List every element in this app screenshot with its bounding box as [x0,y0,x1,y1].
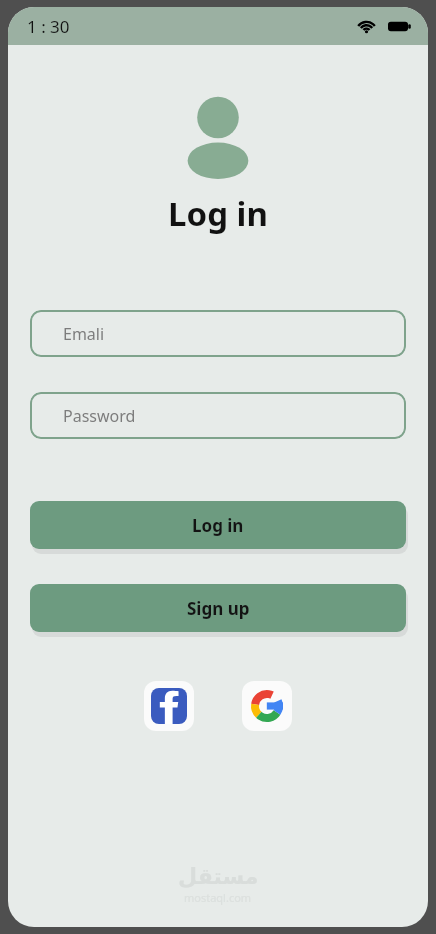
staticText: mostaql.com [184,890,252,905]
staticText: 1 : 30 [27,15,70,38]
staticText: Emali [63,323,105,345]
button[interactable]: Password [30,392,406,439]
button[interactable]: Sign in with Facebook [144,681,194,731]
staticText: Log in [192,514,244,537]
staticText: Log in [8,191,428,236]
staticText: مستقل [178,864,259,890]
staticText: Sign up [187,597,250,620]
button[interactable]: Emali [30,310,406,357]
button[interactable]: Sign up [30,584,406,632]
button[interactable]: Log in [30,501,406,549]
button[interactable]: Sign in with Google [242,681,292,731]
staticText: Password [63,405,136,427]
